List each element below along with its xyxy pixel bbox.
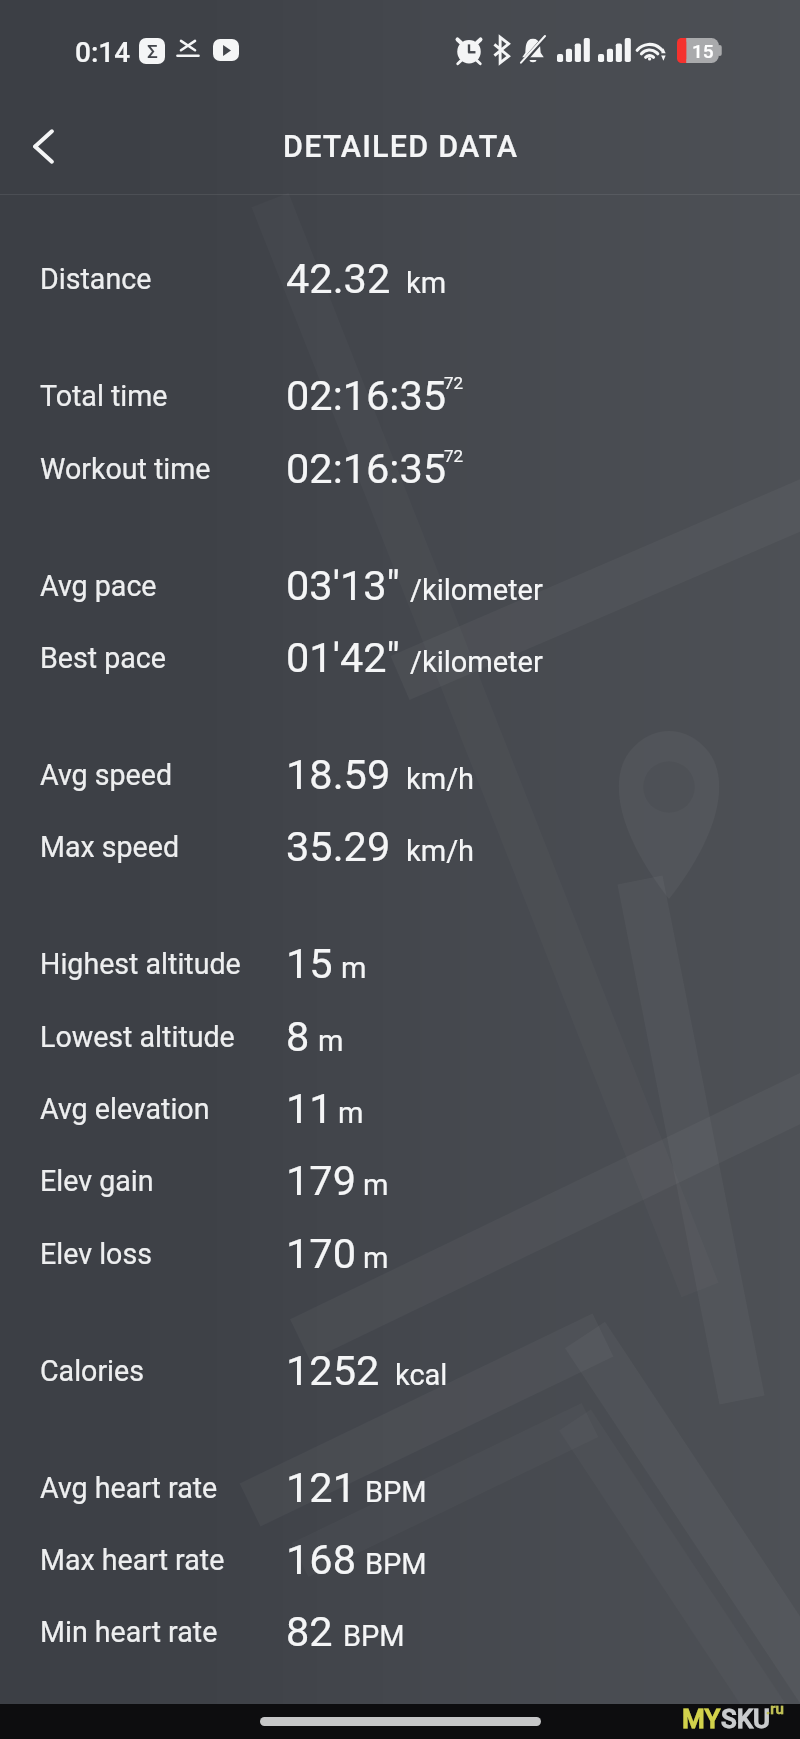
button[interactable]: Avg pace (0, 548, 800, 620)
staticText: Best pace (40, 641, 166, 675)
staticText: 72 (444, 446, 464, 466)
button[interactable]: Back (7, 110, 79, 182)
staticText: 15 (692, 40, 714, 62)
staticText: 01'42" (286, 633, 400, 682)
staticText: 8 (286, 1012, 310, 1061)
staticText: Max heart rate (40, 1543, 225, 1577)
staticText: m (341, 951, 367, 985)
staticText: km/h (406, 834, 475, 868)
button[interactable]: Max heart rate (0, 1522, 800, 1594)
button[interactable]: Best pace (0, 620, 800, 692)
staticText: Min heart rate (40, 1615, 218, 1649)
button[interactable]: Total time (0, 358, 800, 430)
button[interactable]: Avg elevation (0, 1071, 800, 1143)
staticText: BPM (365, 1475, 427, 1509)
staticText: Lowest altitude (40, 1020, 235, 1054)
staticText: SKU (721, 1704, 771, 1734)
staticText: 121 (286, 1463, 356, 1512)
staticText: 02:16:35 (286, 444, 447, 493)
staticText: 72 (444, 373, 464, 393)
staticText: 18.59 (286, 750, 391, 799)
staticText: BPM (343, 1619, 405, 1653)
staticText: km (406, 266, 447, 300)
staticText: Max speed (40, 830, 180, 864)
button[interactable]: Lowest altitude (0, 999, 800, 1071)
staticText: 03'13" (286, 561, 400, 610)
staticText: Avg pace (40, 569, 157, 603)
staticText: 11 (286, 1084, 333, 1133)
staticText: 82 (286, 1607, 333, 1656)
staticText: BPM (365, 1547, 427, 1581)
button[interactable]: Elev loss (0, 1216, 800, 1288)
button[interactable]: Elev gain (0, 1143, 800, 1215)
staticText: 168 (286, 1535, 356, 1584)
staticText: Total time (40, 379, 168, 413)
button[interactable]: Highest altitude (0, 926, 800, 998)
button[interactable]: Calories (0, 1333, 800, 1405)
staticText: Avg speed (40, 758, 173, 792)
staticText: 170 (286, 1229, 356, 1278)
staticText: Workout time (40, 452, 211, 486)
staticText: m (363, 1168, 389, 1202)
staticText: m (363, 1241, 389, 1275)
staticText: km/h (406, 762, 475, 796)
staticText: m (338, 1096, 364, 1130)
button[interactable]: Max speed (0, 809, 800, 881)
button[interactable]: Workout time (0, 431, 800, 503)
staticText: m (318, 1024, 344, 1058)
staticText: Σ (147, 40, 158, 62)
staticText: DETAILED DATA (283, 129, 519, 165)
button[interactable]: Distance (0, 241, 800, 313)
staticText: Avg elevation (40, 1092, 210, 1126)
staticText: 35.29 (286, 822, 391, 871)
staticText: kcal (395, 1358, 448, 1392)
button[interactable]: Avg heart rate (0, 1450, 800, 1522)
staticText: /kilometer (410, 645, 543, 679)
staticText: 0:14 (75, 36, 131, 69)
staticText: Avg heart rate (40, 1471, 218, 1505)
staticText: 15 (286, 939, 333, 988)
staticText: /kilometer (410, 573, 543, 607)
staticText: 42.32 (286, 254, 391, 303)
button[interactable]: Avg speed (0, 737, 800, 809)
staticText: 1252 (286, 1346, 380, 1395)
staticText: Elev loss (40, 1237, 152, 1271)
staticText: Highest altitude (40, 947, 241, 981)
staticText: .ru (766, 1700, 784, 1718)
staticText: Distance (40, 262, 152, 296)
staticText: 02:16:35 (286, 371, 447, 420)
button[interactable]: Min heart rate (0, 1594, 800, 1666)
staticText: MY (682, 1704, 721, 1734)
staticText: Calories (40, 1354, 144, 1388)
staticText: Elev gain (40, 1164, 154, 1198)
staticText: 179 (286, 1156, 356, 1205)
